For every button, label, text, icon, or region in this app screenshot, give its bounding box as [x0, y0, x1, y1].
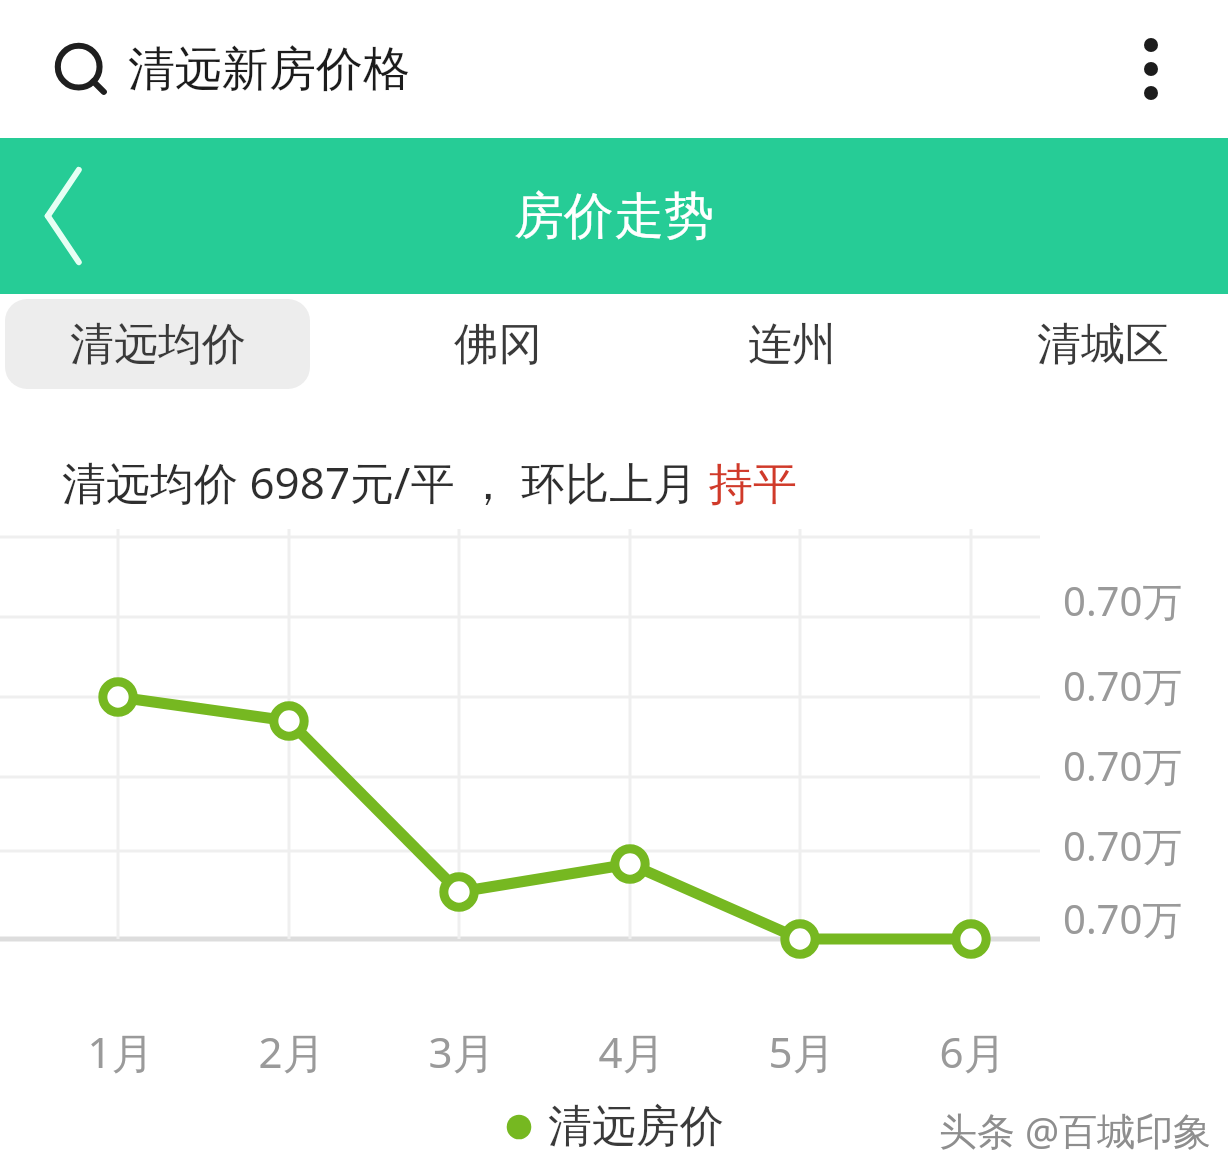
button[interactable]: Back	[22, 161, 108, 271]
staticText: 2月	[258, 1023, 325, 1080]
staticText: 清远均价	[70, 317, 246, 372]
staticText: 头条 @百城印象	[939, 1104, 1212, 1156]
staticText: 0.70万	[1063, 891, 1183, 946]
button[interactable]: Search	[0, 0, 1228, 138]
staticText: 1月	[87, 1023, 154, 1080]
button[interactable]: More options	[1122, 19, 1180, 119]
staticText: 佛冈	[454, 317, 542, 372]
button[interactable]: 佛冈	[400, 299, 596, 389]
staticText: 清远均价 6987元/平 ， 环比上月 持平	[62, 452, 797, 512]
button[interactable]: 清远均价	[5, 299, 310, 389]
staticText: 清城区	[1037, 317, 1169, 372]
staticText: 3月	[428, 1023, 495, 1080]
button[interactable]: 连州	[694, 299, 890, 389]
staticText: 房价走势	[514, 185, 714, 248]
staticText: 6月	[939, 1023, 1006, 1080]
staticText: 5月	[768, 1023, 835, 1080]
button[interactable]: 清城区	[980, 299, 1225, 389]
staticText: 0.70万	[1063, 573, 1183, 628]
staticText: 清远房价	[548, 1099, 724, 1154]
staticText: 0.70万	[1063, 738, 1183, 793]
staticText: 连州	[748, 317, 836, 372]
staticText: 0.70万	[1063, 658, 1183, 713]
staticText: 0.70万	[1063, 818, 1183, 873]
other: Search	[52, 40, 110, 98]
button[interactable]: 清远房价	[504, 1099, 724, 1154]
staticText: 4月	[598, 1023, 665, 1080]
staticText: 清远新房价格	[128, 40, 410, 99]
